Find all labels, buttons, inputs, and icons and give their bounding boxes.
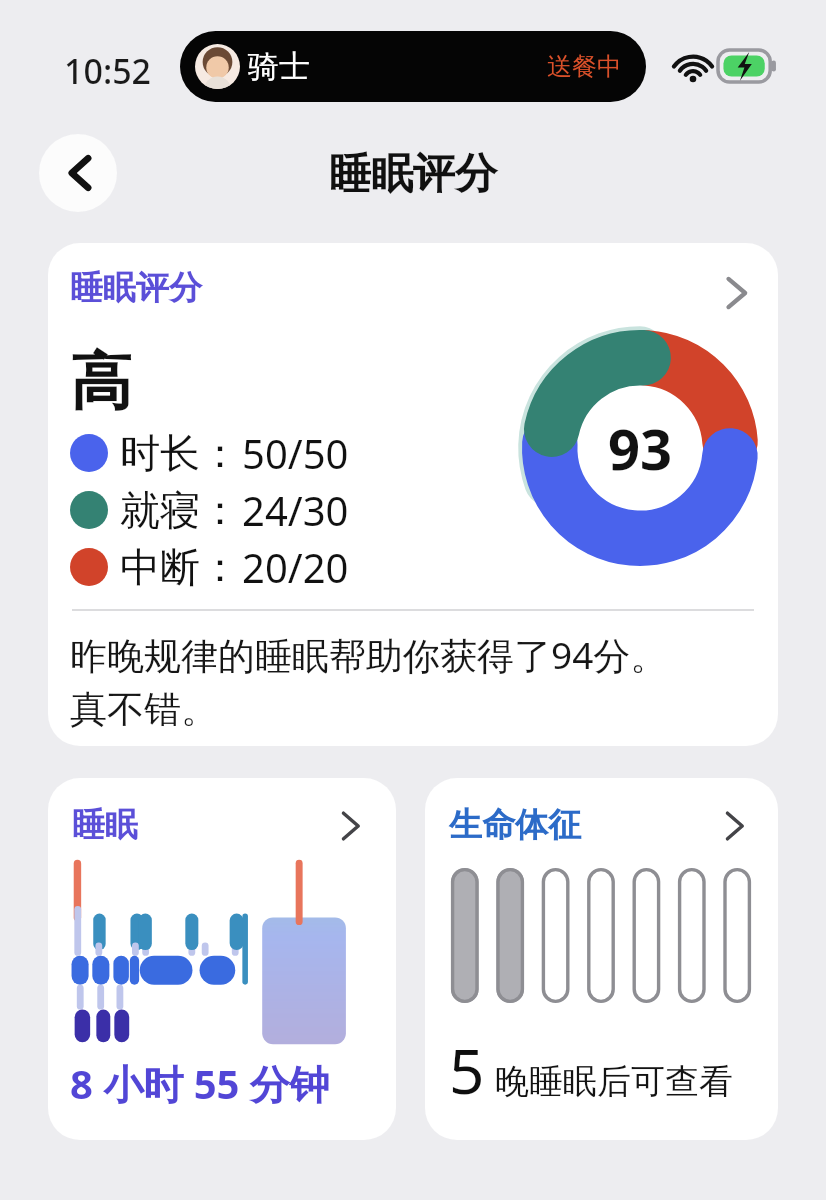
staticText: 时长： bbox=[120, 428, 240, 478]
staticText: 10:52 bbox=[64, 48, 152, 94]
staticText: 送餐中 bbox=[547, 51, 622, 82]
staticText: 睡眠 bbox=[72, 804, 138, 846]
staticText: 5 bbox=[449, 1028, 485, 1112]
staticText: 中断： bbox=[120, 542, 240, 592]
staticText: 生命体征 bbox=[449, 804, 581, 846]
staticText: 24/30 bbox=[242, 483, 349, 537]
staticText: 晚睡眠后可查看 bbox=[495, 1060, 733, 1103]
button[interactable]: 睡眠评分 bbox=[48, 243, 778, 746]
staticText: 高 bbox=[70, 343, 132, 421]
staticText: 93 bbox=[608, 410, 673, 486]
staticText: 就寝： bbox=[120, 485, 240, 535]
button[interactable]: 生命体征 bbox=[425, 778, 778, 1140]
staticText: 昨晚规律的睡眠帮助你获得了94分。 真不错。 bbox=[70, 629, 668, 733]
staticText: 睡眠评分 bbox=[0, 148, 826, 201]
button[interactable]: 骑士 bbox=[180, 31, 646, 102]
button[interactable]: Back bbox=[39, 134, 117, 212]
staticText: 50/50 bbox=[242, 426, 349, 480]
staticText: 20/20 bbox=[242, 540, 349, 594]
staticText: 8 小时 55 分钟 bbox=[70, 1056, 330, 1111]
staticText: 睡眠评分 bbox=[70, 267, 202, 309]
staticText: 骑士 bbox=[248, 47, 310, 86]
button[interactable]: 睡眠 bbox=[48, 778, 396, 1140]
